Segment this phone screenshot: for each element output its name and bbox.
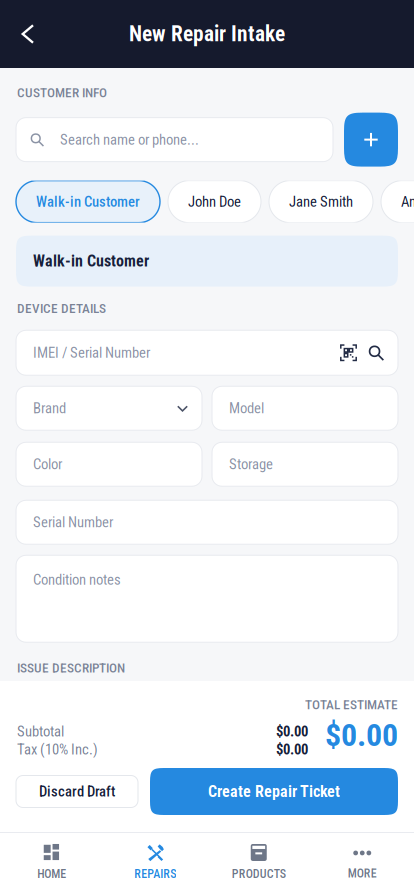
- staticText: Brand: [33, 400, 66, 417]
- staticText: Create Repair Ticket: [208, 782, 340, 801]
- button[interactable]: Anna Lee: [381, 181, 414, 223]
- staticText: TOTAL ESTIMATE: [305, 697, 398, 712]
- staticText: New Repair Intake: [129, 21, 285, 46]
- staticText: Serial Number: [33, 514, 113, 531]
- staticText: MORE: [348, 866, 377, 881]
- button[interactable]: Discard Draft: [16, 775, 138, 807]
- button[interactable]: REPAIRS: [103, 832, 207, 893]
- staticText: REPAIRS: [134, 867, 176, 881]
- button[interactable]: Create Repair Ticket: [150, 768, 398, 815]
- staticText: $0.00: [276, 723, 308, 740]
- button[interactable]: Back: [5, 11, 51, 57]
- staticText: Walk-in Customer: [36, 193, 140, 210]
- button[interactable]: Jane Smith: [269, 181, 373, 223]
- staticText: $0.00: [276, 741, 308, 758]
- button[interactable]: Add customer: [344, 113, 398, 167]
- staticText: Search name or phone...: [60, 131, 199, 148]
- staticText: DEVICE DETAILS: [17, 301, 106, 316]
- button[interactable]: PRODUCTS: [207, 832, 310, 893]
- staticText: PRODUCTS: [232, 867, 286, 881]
- staticText: CUSTOMER INFO: [17, 85, 107, 101]
- staticText: Storage: [229, 456, 273, 473]
- staticText: IMEI / Serial Number: [33, 344, 150, 361]
- staticText: $0.00: [325, 716, 398, 754]
- staticText: Subtotal: [17, 723, 64, 740]
- staticText: Jane Smith: [289, 193, 353, 210]
- staticText: HOME: [37, 867, 66, 881]
- staticText: Discard Draft: [39, 783, 115, 800]
- staticText: John Doe: [188, 193, 241, 210]
- staticText: Color: [33, 456, 62, 473]
- staticText: Model: [229, 400, 264, 417]
- button[interactable]: Walk-in Customer: [16, 181, 160, 223]
- staticText: Tax (10% Inc.): [17, 741, 98, 758]
- button[interactable]: HOME: [0, 832, 103, 893]
- button[interactable]: MORE: [310, 832, 414, 893]
- staticText: Condition notes: [33, 571, 121, 588]
- button[interactable]: John Doe: [168, 181, 261, 223]
- staticText: Anna Lee: [401, 193, 414, 210]
- staticText: Walk-in Customer: [33, 252, 149, 270]
- staticText: ISSUE DESCRIPTION: [17, 660, 125, 676]
